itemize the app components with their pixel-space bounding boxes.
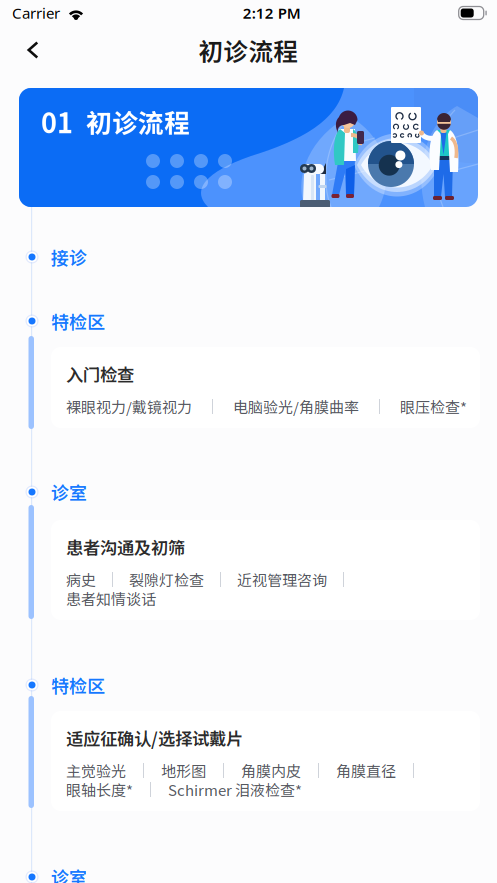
staticText: 入门检查: [66, 361, 134, 386]
staticText: 特检区: [51, 672, 105, 698]
staticText: Schirmer 泪液检查*: [168, 779, 302, 800]
staticText: 患者知情谈话: [66, 588, 156, 609]
staticText: 地形图: [161, 760, 206, 781]
staticText: 电脑验光/角膜曲率: [233, 396, 359, 417]
staticText: 初诊流程: [86, 103, 190, 140]
staticText: 眼压检查*: [400, 396, 467, 417]
staticText: 适应征确认/选择试戴片: [66, 725, 243, 750]
button[interactable]: Back: [12, 29, 54, 71]
staticText: 2:12 PM: [243, 3, 301, 23]
staticText: 角膜内皮: [241, 760, 301, 781]
staticText: 01: [41, 102, 73, 141]
staticText: 角膜直径: [336, 760, 396, 781]
staticText: 主觉验光: [66, 760, 126, 781]
staticText: 患者沟通及初筛: [66, 534, 185, 559]
staticText: 诊室: [51, 864, 87, 883]
staticText: 眼轴长度*: [66, 779, 133, 800]
staticText: Carrier: [12, 3, 60, 23]
staticText: 裸眼视力/戴镜视力: [66, 396, 192, 417]
staticText: 初诊流程: [198, 32, 298, 68]
staticText: 近视管理咨询: [237, 569, 327, 590]
staticText: 病史: [66, 569, 96, 590]
staticText: 特检区: [51, 308, 105, 334]
staticText: 接诊: [51, 244, 87, 270]
staticText: 诊室: [51, 479, 87, 505]
staticText: 裂隙灯检查: [129, 569, 204, 590]
